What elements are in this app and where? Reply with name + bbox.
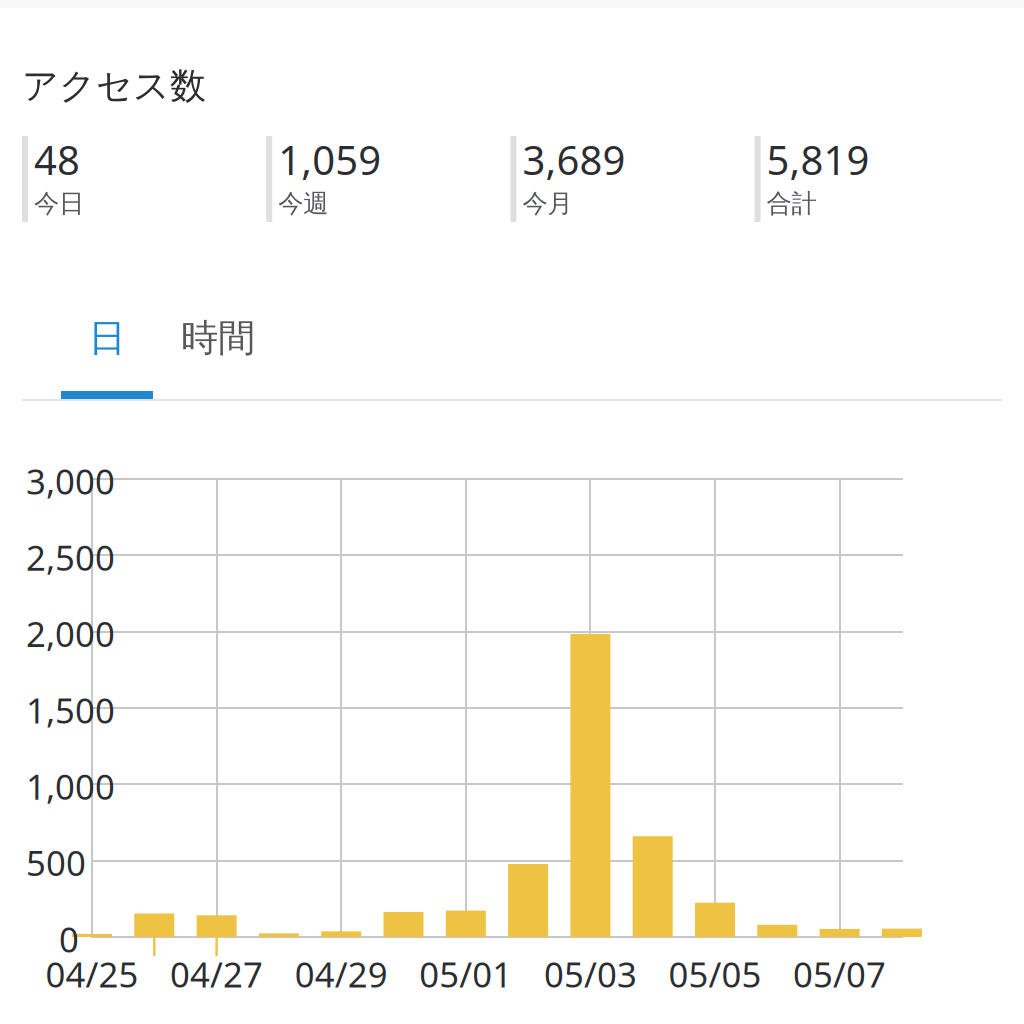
staticText: 日 bbox=[88, 315, 125, 361]
staticText: 時間 bbox=[181, 315, 255, 361]
staticText: 2,500 bbox=[26, 534, 115, 580]
staticText: アクセス数 bbox=[22, 64, 206, 108]
staticText: 05/03 bbox=[544, 951, 637, 997]
staticText: 2,000 bbox=[26, 611, 115, 657]
staticText: 今日 bbox=[34, 188, 84, 219]
staticText: 04/29 bbox=[295, 951, 388, 997]
staticText: 合計 bbox=[767, 188, 817, 219]
button[interactable]: 日 bbox=[61, 295, 153, 399]
staticText: 3,000 bbox=[26, 458, 115, 504]
button[interactable]: 時間 bbox=[153, 295, 283, 399]
staticText: 04/25 bbox=[45, 951, 138, 997]
staticText: 48 bbox=[34, 133, 80, 186]
staticText: 1,500 bbox=[26, 687, 115, 733]
staticText: 1,000 bbox=[26, 763, 115, 809]
staticText: 05/07 bbox=[793, 951, 886, 997]
staticText: 今月 bbox=[522, 188, 572, 219]
staticText: 5,819 bbox=[767, 133, 870, 186]
staticText: 3,689 bbox=[522, 133, 625, 186]
staticText: 0 bbox=[59, 916, 79, 962]
staticText: 1,059 bbox=[278, 133, 381, 186]
staticText: 05/01 bbox=[419, 951, 512, 997]
staticText: 04/27 bbox=[170, 951, 263, 997]
staticText: 500 bbox=[26, 840, 86, 886]
staticText: 05/05 bbox=[668, 951, 761, 997]
staticText: 今週 bbox=[278, 188, 328, 219]
